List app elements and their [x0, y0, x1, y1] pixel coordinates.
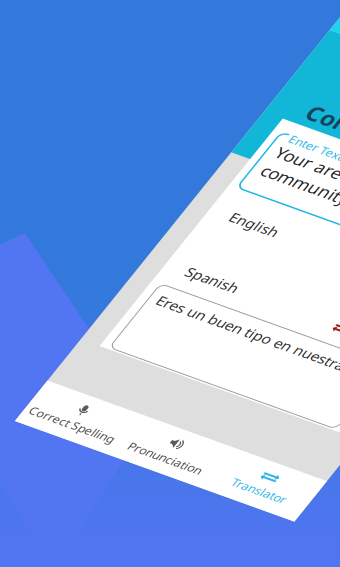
staticText: Your are a student in our community. [37, 146, 242, 192]
staticText: Spanish [42, 299, 96, 318]
staticText: Eres un buen tipo en nuestra comunidad. [37, 338, 321, 357]
button[interactable]: Translator [198, 468, 297, 520]
button[interactable]: Pronunciation [99, 468, 198, 520]
staticText: Translator [219, 494, 276, 510]
